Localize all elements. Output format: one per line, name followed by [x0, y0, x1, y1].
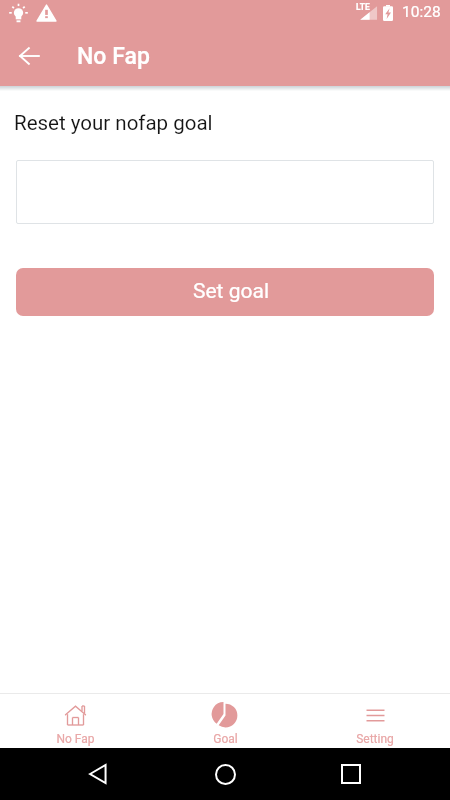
button[interactable]: Recents: [329, 752, 373, 796]
staticText: Set goal: [193, 279, 269, 304]
staticText: Reset your nofap goal: [14, 111, 213, 135]
staticText: Setting: [356, 732, 394, 746]
staticText: LTE: [356, 2, 370, 12]
staticText: Goal: [213, 732, 238, 746]
button[interactable]: Back: [76, 752, 120, 796]
button[interactable]: Set goal: [16, 268, 434, 316]
button[interactable]: Goal: [150, 696, 300, 746]
staticText: No Fap: [77, 43, 150, 70]
button[interactable]: No Fap: [0, 696, 150, 746]
button[interactable]: [16, 160, 434, 224]
button[interactable]: Back: [8, 36, 48, 76]
button[interactable]: Setting: [300, 696, 450, 746]
button[interactable]: Home: [203, 752, 247, 796]
staticText: 10:28: [402, 3, 441, 21]
staticText: No Fap: [56, 732, 95, 746]
